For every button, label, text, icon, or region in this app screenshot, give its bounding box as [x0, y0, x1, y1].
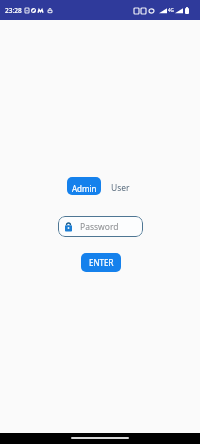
button[interactable]: Admin — [67, 177, 101, 195]
staticText: ENTER — [89, 257, 114, 268]
other: Home gesture bar — [71, 437, 129, 439]
staticText: User — [111, 182, 130, 194]
staticText: 4G — [168, 7, 174, 13]
staticText: Password — [80, 221, 119, 233]
staticText: 23:28 — [5, 6, 22, 15]
button[interactable]: Password — [58, 216, 143, 237]
staticText: Admin — [72, 183, 97, 194]
button[interactable]: User — [106, 177, 134, 195]
button[interactable]: ENTER — [81, 253, 121, 272]
